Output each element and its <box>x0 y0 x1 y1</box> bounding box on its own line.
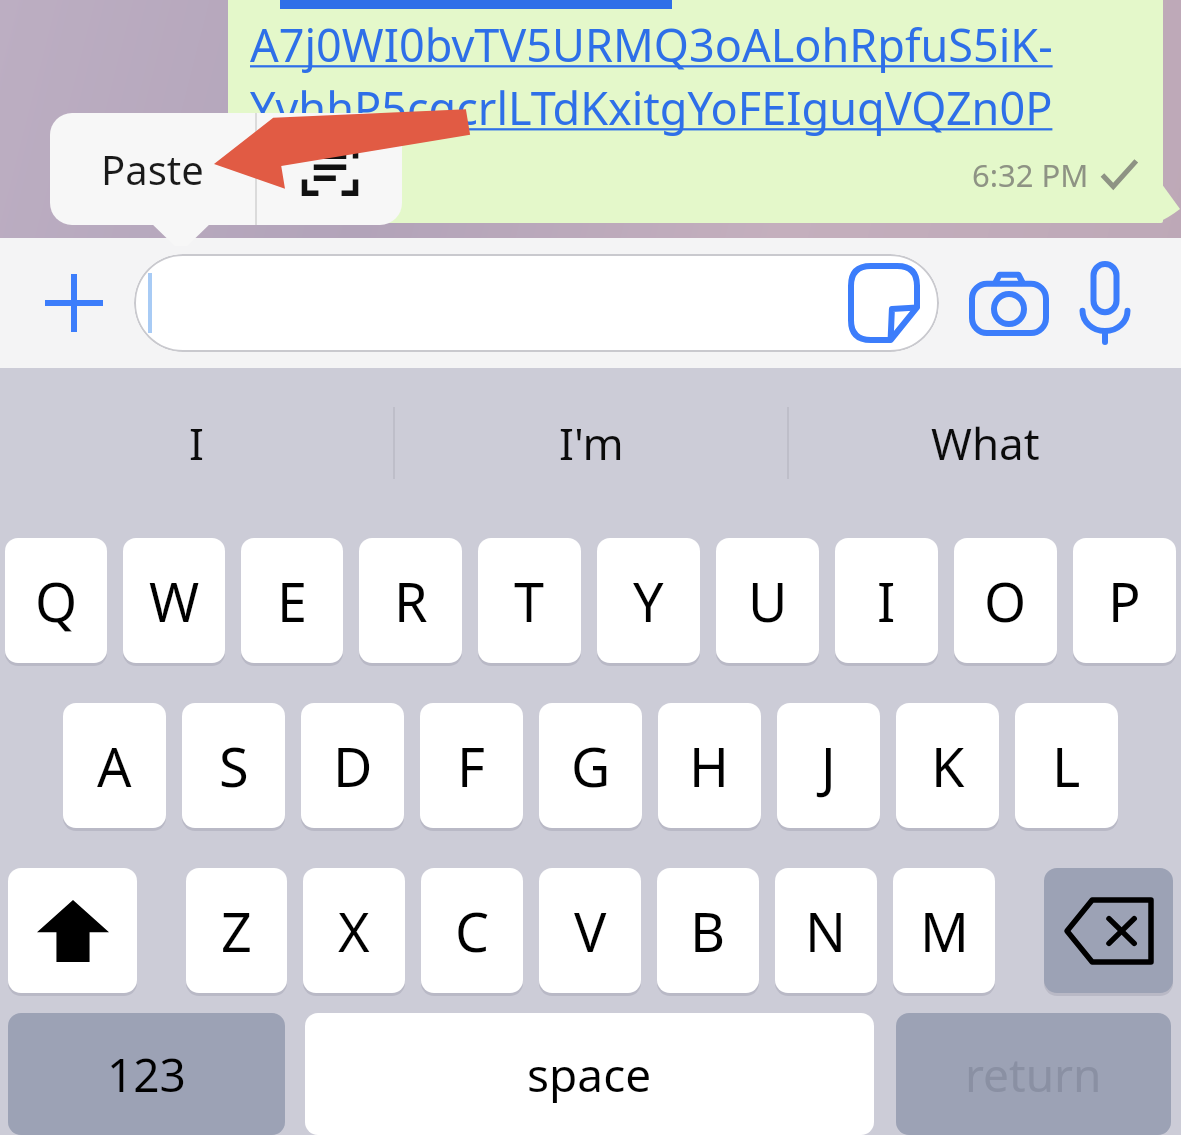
button[interactable]: D <box>301 703 404 828</box>
staticText: 6:32 PM <box>972 154 1089 196</box>
staticText: L <box>1052 729 1081 803</box>
button[interactable]: Paste <box>50 113 255 225</box>
staticText: P <box>1108 564 1141 638</box>
button[interactable]: Z <box>186 868 287 993</box>
button[interactable]: J <box>777 703 880 828</box>
button[interactable]: L <box>1015 703 1118 828</box>
staticText: A7j0WI0bvTV5URMQ3oALohRpfuS5iK- <box>250 14 1053 75</box>
staticText: I <box>877 564 896 638</box>
staticText: 123 <box>107 1043 186 1106</box>
staticText: R <box>394 564 428 638</box>
button[interactable]: Attach <box>28 257 120 349</box>
staticText: F <box>457 729 486 803</box>
button[interactable]: Scan text <box>257 113 402 225</box>
staticText: D <box>333 729 373 803</box>
staticText: I <box>189 413 204 473</box>
button[interactable]: What <box>789 368 1181 518</box>
button[interactable]: N <box>775 868 877 993</box>
button[interactable]: Q <box>5 538 107 663</box>
staticText: N <box>805 894 847 968</box>
staticText: B <box>690 894 726 968</box>
button[interactable]: U <box>716 538 819 663</box>
staticText: YvhhP5cgcrlLTdKxitgYoFEIguqVQZn0P <box>250 77 1053 138</box>
staticText: Paste <box>101 142 204 196</box>
staticText: C <box>455 894 490 968</box>
staticText: Q <box>35 564 78 638</box>
button[interactable]: B <box>657 868 759 993</box>
staticText: U <box>748 564 788 638</box>
button[interactable]: Voice message <box>1057 255 1153 351</box>
staticText: return <box>965 1043 1102 1106</box>
staticText: Z <box>221 894 252 968</box>
staticText: Y <box>633 564 664 638</box>
staticText: G <box>571 729 611 803</box>
staticText: W <box>149 564 200 638</box>
button[interactable]: I <box>0 368 393 518</box>
button[interactable]: return <box>896 1013 1171 1135</box>
button[interactable]: 123 <box>8 1013 285 1135</box>
button[interactable]: space <box>305 1013 874 1135</box>
staticText: V <box>574 894 607 968</box>
staticText: space <box>527 1043 652 1106</box>
staticText: O <box>984 564 1027 638</box>
staticText: K <box>931 729 965 803</box>
staticText: I'm <box>559 413 624 473</box>
button[interactable]: T <box>478 538 581 663</box>
button[interactable]: I <box>835 538 938 663</box>
staticText: H <box>689 729 730 803</box>
staticText: M <box>920 894 969 968</box>
button[interactable]: C <box>421 868 523 993</box>
staticText: A <box>97 729 132 803</box>
button[interactable]: Camera <box>961 255 1057 351</box>
staticText: T <box>514 564 545 638</box>
button[interactable]: G <box>539 703 642 828</box>
button[interactable]: S <box>182 703 285 828</box>
button[interactable]: P <box>1073 538 1176 663</box>
button[interactable]: Backspace <box>1044 868 1173 993</box>
button[interactable]: H <box>658 703 761 828</box>
button[interactable]: Shift <box>8 868 137 993</box>
button[interactable]: Y <box>597 538 700 663</box>
button[interactable]: I'm <box>395 368 787 518</box>
staticText: X <box>338 894 370 968</box>
button[interactable]: M <box>893 868 995 993</box>
staticText: What <box>931 413 1040 473</box>
button[interactable]: W <box>123 538 225 663</box>
staticText: S <box>219 729 249 803</box>
button[interactable]: F <box>420 703 523 828</box>
button[interactable] <box>134 254 939 352</box>
button[interactable]: O <box>954 538 1057 663</box>
button[interactable]: V <box>539 868 641 993</box>
button[interactable]: K <box>896 703 999 828</box>
staticText: J <box>821 729 836 803</box>
button[interactable]: E <box>241 538 343 663</box>
staticText: E <box>277 564 308 638</box>
button[interactable]: A <box>63 703 166 828</box>
button[interactable]: R <box>359 538 462 663</box>
button[interactable]: X <box>303 868 405 993</box>
